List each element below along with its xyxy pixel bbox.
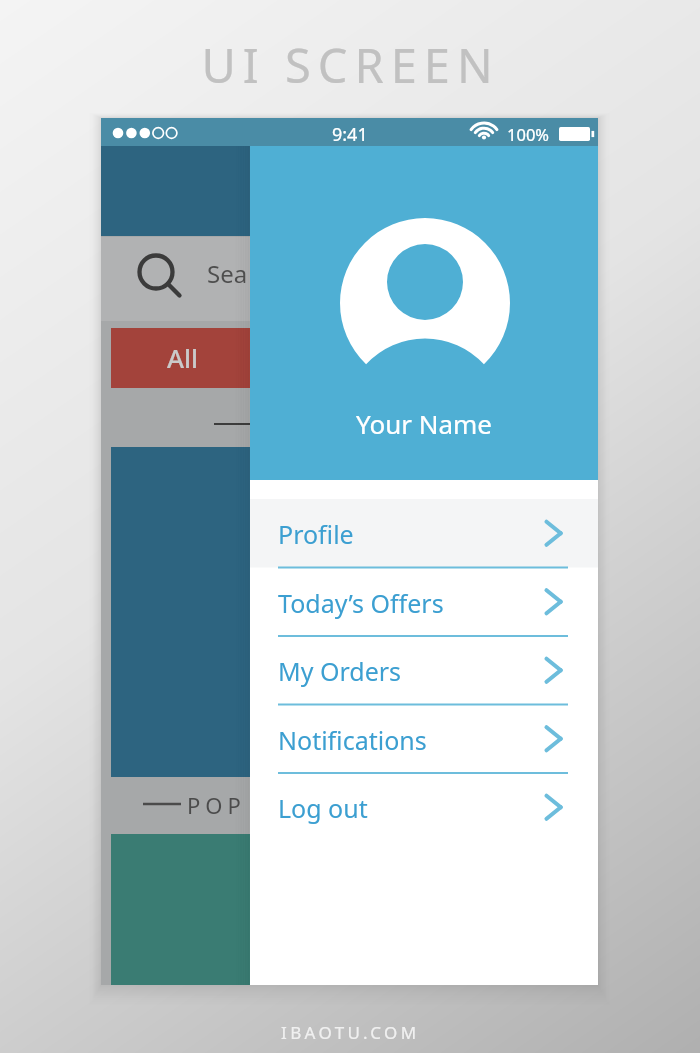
button[interactable]: Profile xyxy=(250,499,598,568)
staticText: Profile xyxy=(278,517,354,551)
staticText: Today’s Offers xyxy=(278,586,444,620)
staticText: 9:41 xyxy=(332,122,368,146)
staticText: POP xyxy=(187,790,246,820)
button[interactable]: My Orders xyxy=(250,636,598,705)
staticText: My Orders xyxy=(278,654,402,688)
staticText: Sea xyxy=(207,257,248,290)
staticText: 100% xyxy=(507,123,550,145)
button[interactable]: Profile photo xyxy=(340,218,510,390)
staticText: All xyxy=(167,340,199,375)
staticText: Notifications xyxy=(278,723,427,757)
staticText: IBAOTU.COM xyxy=(281,1021,420,1044)
button[interactable]: Log out xyxy=(250,773,598,842)
staticText: Log out xyxy=(278,791,368,825)
staticText: Your Name xyxy=(356,406,493,441)
button[interactable]: Notifications xyxy=(250,705,598,774)
button[interactable]: Today’s Offers xyxy=(250,568,598,637)
staticText: UI SCREEN xyxy=(201,33,500,91)
